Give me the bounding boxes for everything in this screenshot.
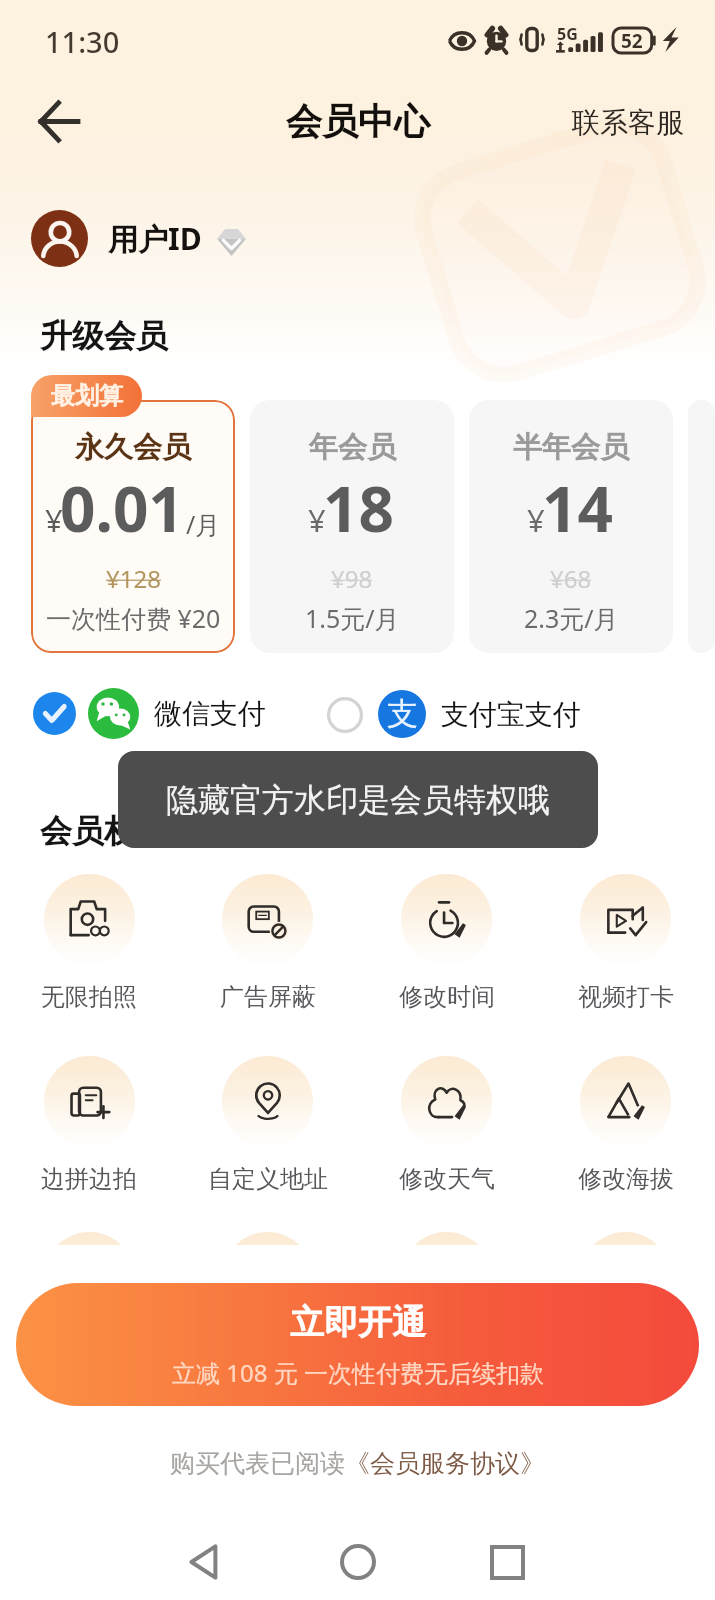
staticText: 立减 108 元 一次性付费无后续扣款 [172,1356,544,1389]
staticText: 年会员 [309,429,396,466]
button[interactable]: 《会员服务协议》 [345,1448,545,1479]
staticText: 购买代表已阅读 [170,1448,345,1479]
button[interactable]: 联系客服 [572,105,684,140]
button[interactable]: 支 [323,690,581,738]
button[interactable]: 微信支付 [33,688,266,739]
button[interactable]: 主页 [328,1532,388,1592]
staticText: 无限拍照 [41,982,137,1012]
staticText: 18 [323,466,394,550]
staticText: 半年会员 [513,429,629,466]
button[interactable]: 年会员 [250,400,454,653]
staticText: 广告屏蔽 [220,982,316,1012]
button[interactable]: 边拼边拍 [0,1056,178,1194]
staticText: 0.01 [60,466,184,550]
staticText: 11:30 [45,22,120,61]
staticText: 自定义地址 [208,1164,328,1194]
staticText: 5G [557,23,578,45]
button[interactable]: 无限拍照 [0,874,178,1012]
staticText: ¥68 [550,562,592,595]
staticText: 52 [621,28,643,54]
button[interactable]: 返回 [26,89,90,153]
button[interactable]: 修改天气 [357,1056,536,1194]
button[interactable]: 永久会员 [31,400,235,653]
staticText: /月 [186,507,221,541]
button[interactable]: 返回 [174,1532,234,1592]
staticText: 2.3元/月 [524,601,619,635]
staticText: ¥ [308,499,326,541]
staticText: ¥98 [331,562,373,595]
button[interactable]: 修改海拔 [536,1056,715,1194]
button[interactable]: 最近任务 [477,1532,537,1592]
staticText: 会员权益 [40,811,168,851]
button[interactable]: 半年会员 [469,400,673,653]
staticText: 修改天气 [399,1164,495,1194]
staticText: ¥ [45,499,63,541]
staticText: ¥ [527,499,545,541]
staticText: 永久会员 [75,429,191,466]
button[interactable]: 自定义地址 [178,1056,357,1194]
staticText: 用户ID [108,218,202,259]
button[interactable]: 广告屏蔽 [178,874,357,1012]
staticText: 一次性付费 ¥20 [46,601,221,635]
staticText: 升级会员 [40,316,168,356]
staticText: 立即开通 [290,1301,426,1344]
button[interactable]: 修改时间 [357,874,536,1012]
staticText: 最划算 [51,381,123,411]
staticText: 1.5元/月 [305,601,400,635]
staticText: 支付宝支付 [441,697,581,732]
staticText: 微信支付 [154,696,266,731]
staticText: 修改海拔 [578,1164,674,1194]
staticText: 支 [387,694,418,733]
staticText: 视频打卡 [578,982,674,1012]
staticText: 14 [542,466,613,550]
staticText: ¥128 [106,562,161,595]
button[interactable]: 视频打卡 [536,874,715,1012]
staticText: 隐藏官方水印是会员特权哦 [166,780,550,820]
button[interactable]: 立即开通 [16,1283,699,1406]
staticText: 边拼边拍 [41,1164,137,1194]
staticText: 修改时间 [399,982,495,1012]
staticText: 会员中心 [286,99,430,144]
